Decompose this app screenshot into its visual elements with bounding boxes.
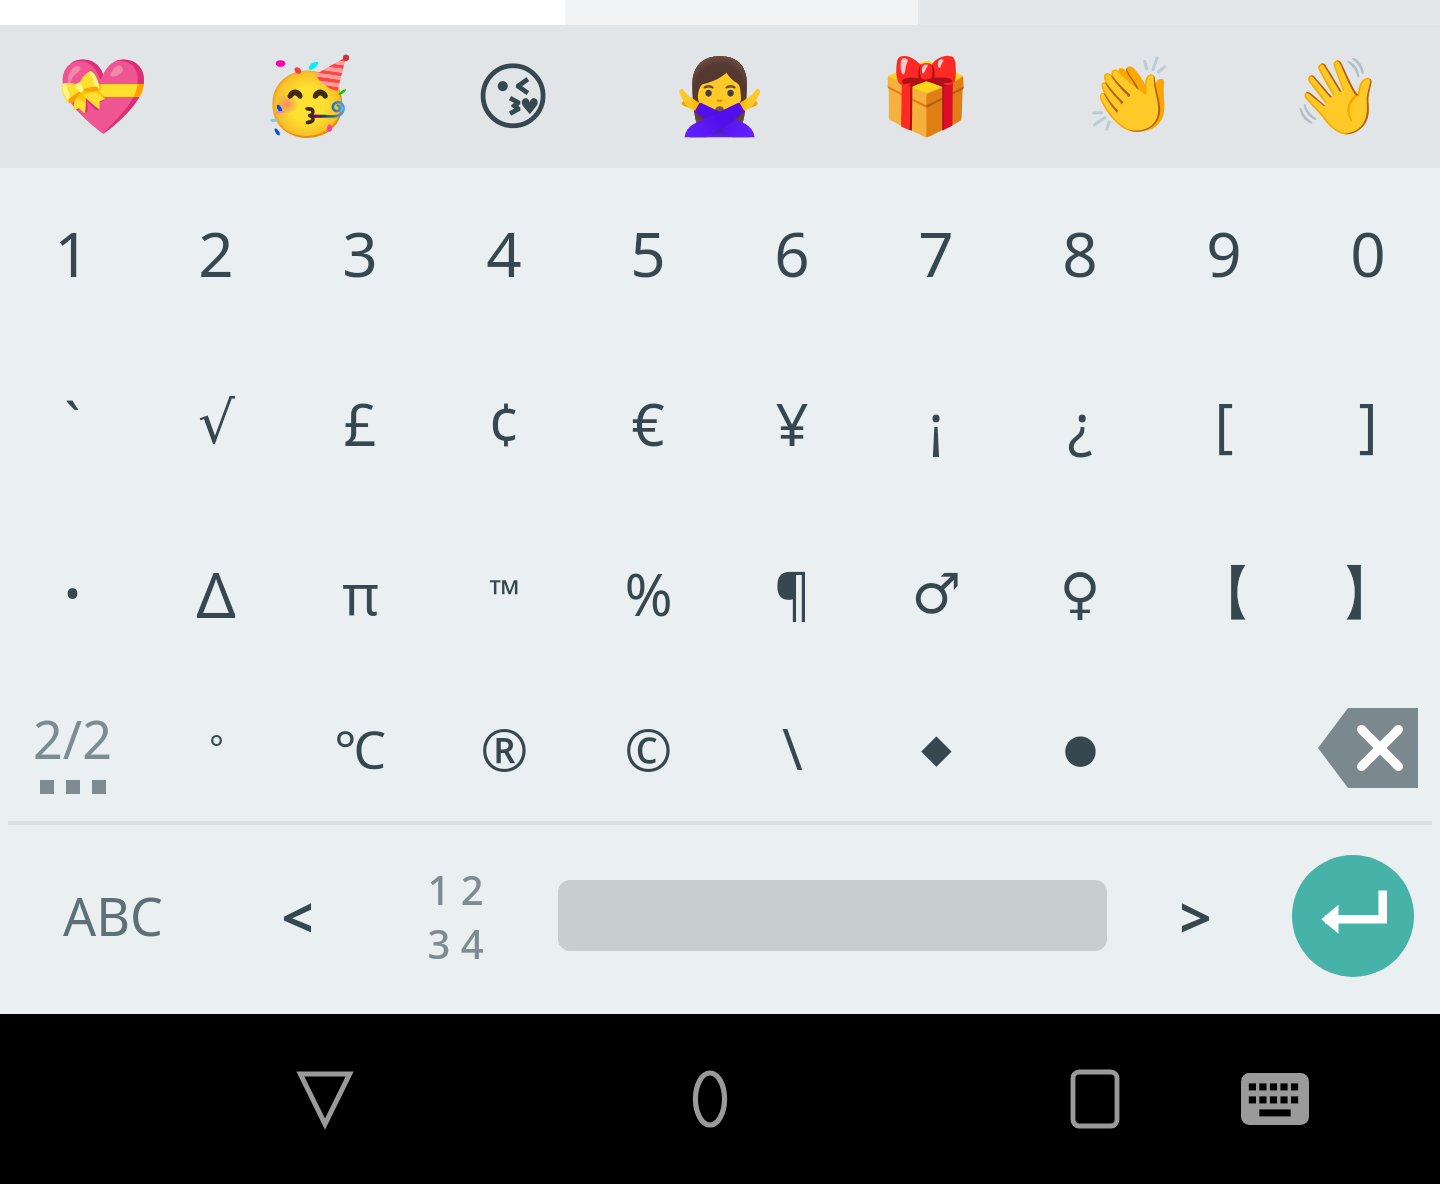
staticText: > — [1179, 878, 1212, 954]
button[interactable]: £ — [288, 338, 432, 508]
button[interactable]: ¢ — [432, 338, 576, 508]
staticText: 6 — [774, 211, 810, 295]
button[interactable]: ♀ — [1008, 508, 1152, 678]
button[interactable]: ™ — [432, 508, 576, 678]
button[interactable]: • — [0, 508, 144, 678]
staticText: < — [281, 878, 314, 954]
staticText: © — [624, 709, 673, 788]
button[interactable]: ` — [0, 338, 144, 508]
button[interactable]: Move cursor right — [1125, 828, 1265, 1003]
button[interactable]: 🥳 — [205, 25, 410, 168]
button[interactable]: ABC — [0, 828, 225, 1003]
staticText: ℃ — [334, 713, 386, 784]
button[interactable]: ] — [1296, 338, 1440, 508]
staticText: 🥳 — [261, 53, 354, 140]
staticText: ¿ — [1067, 384, 1093, 463]
button[interactable]: ℃ — [288, 678, 432, 818]
button[interactable]: Delete — [1296, 678, 1440, 818]
button[interactable]: ¥ — [720, 338, 864, 508]
staticText: ● — [1063, 725, 1098, 772]
staticText: 😘 — [474, 54, 552, 140]
button[interactable]: 7 — [864, 168, 1008, 338]
staticText: 👋 — [1291, 53, 1384, 140]
staticText: Δ — [196, 551, 236, 635]
staticText: [ — [1214, 384, 1234, 463]
button[interactable]: 2/2 — [0, 678, 144, 818]
button[interactable]: 【 — [1152, 508, 1296, 678]
staticText: 7 — [918, 211, 954, 295]
button[interactable]: © — [576, 678, 720, 818]
button[interactable]: ♂ — [864, 508, 1008, 678]
button[interactable]: Recents — [1010, 1014, 1180, 1184]
staticText: ◆ — [921, 725, 952, 772]
staticText: ® — [480, 709, 529, 788]
staticText: 3 — [342, 211, 378, 295]
staticText: 0 — [1350, 211, 1386, 295]
button[interactable]: 6 — [720, 168, 864, 338]
button[interactable]: 😘 — [410, 25, 616, 168]
staticText: 4 — [486, 211, 522, 295]
button[interactable]: 8 — [1008, 168, 1152, 338]
button[interactable]: 4 — [432, 168, 576, 338]
button[interactable]: ° — [144, 678, 288, 818]
staticText: 】 — [1339, 557, 1397, 630]
staticText: 3 4 — [427, 916, 484, 970]
staticText: 9 — [1206, 211, 1242, 295]
staticText: 🎁 — [879, 53, 972, 140]
staticText: 2 — [198, 211, 234, 295]
button[interactable]: 2 — [144, 168, 288, 338]
staticText: ™ — [489, 566, 520, 620]
staticText: ] — [1358, 384, 1378, 463]
button[interactable]: Enter — [1292, 855, 1414, 977]
button[interactable]: 5 — [576, 168, 720, 338]
staticText: 【 — [1195, 557, 1253, 630]
button[interactable]: 0 — [1296, 168, 1440, 338]
button[interactable]: Home — [625, 1014, 795, 1184]
button[interactable]: 🙅‍♀️ — [616, 25, 822, 168]
staticText: 💝 — [56, 53, 149, 140]
staticText: 🙅‍♀️ — [673, 53, 766, 140]
button[interactable]: % — [576, 508, 720, 678]
staticText: ` — [64, 384, 81, 463]
staticText: ABC — [63, 880, 163, 951]
staticText: √ — [198, 389, 235, 457]
staticText: 8 — [1062, 211, 1098, 295]
button[interactable]: 👋 — [1234, 25, 1440, 168]
staticText: \ — [782, 710, 803, 786]
button[interactable]: ® — [432, 678, 576, 818]
button[interactable]: 9 — [1152, 168, 1296, 338]
button[interactable]: 💝 — [0, 25, 205, 168]
button[interactable]: ¡ — [864, 338, 1008, 508]
button[interactable]: Switch keyboard — [1190, 1014, 1360, 1184]
button[interactable]: ◆ — [864, 678, 1008, 818]
staticText: ° — [209, 725, 224, 771]
button[interactable]: π — [288, 508, 432, 678]
button[interactable]: 1 — [0, 168, 144, 338]
button[interactable]: √ — [144, 338, 288, 508]
staticText: 2/2 — [33, 703, 112, 774]
button[interactable]: ¿ — [1008, 338, 1152, 508]
button[interactable]: \ — [720, 678, 864, 818]
staticText: π — [342, 555, 379, 631]
button[interactable]: Hide keyboard — [240, 1014, 410, 1184]
button[interactable]: 】 — [1296, 508, 1440, 678]
staticText: % — [624, 554, 673, 633]
staticText: 👏 — [1085, 53, 1178, 140]
staticText: ¢ — [487, 384, 521, 463]
button[interactable]: 1 2 — [370, 828, 540, 1003]
staticText: ♂ — [911, 561, 962, 626]
button[interactable]: 3 — [288, 168, 432, 338]
button[interactable]: ● — [1008, 678, 1152, 818]
staticText: 1 — [54, 211, 90, 295]
staticText: ¶ — [774, 555, 811, 631]
button[interactable]: 👏 — [1028, 25, 1234, 168]
button[interactable]: Δ — [144, 508, 288, 678]
button[interactable]: € — [576, 338, 720, 508]
staticText: 5 — [630, 211, 666, 295]
button[interactable]: ¶ — [720, 508, 864, 678]
button[interactable]: 🎁 — [822, 25, 1028, 168]
staticText: ¡ — [928, 384, 944, 463]
button[interactable]: Move cursor left — [225, 828, 370, 1003]
button[interactable]: [ — [1152, 338, 1296, 508]
